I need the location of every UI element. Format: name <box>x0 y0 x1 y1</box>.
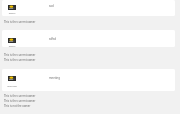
staticText: This is the current owner <box>4 53 36 57</box>
staticText: meeting <box>49 76 60 80</box>
staticText: This is the current owner <box>4 94 36 98</box>
staticText: admin <box>4 12 20 15</box>
staticText: This is the current owner <box>4 20 36 24</box>
staticText: sdfsd <box>49 37 57 41</box>
staticText: admin <box>4 45 20 48</box>
staticText: amin200i <box>4 85 20 88</box>
button[interactable] <box>2 0 175 16</box>
staticText: sad <box>49 4 54 8</box>
staticText: This is the current owner <box>4 58 36 62</box>
button[interactable] <box>2 69 175 91</box>
staticText: This is not the owner <box>4 104 31 108</box>
button[interactable] <box>2 30 175 47</box>
staticText: This is the current owner <box>4 99 36 103</box>
